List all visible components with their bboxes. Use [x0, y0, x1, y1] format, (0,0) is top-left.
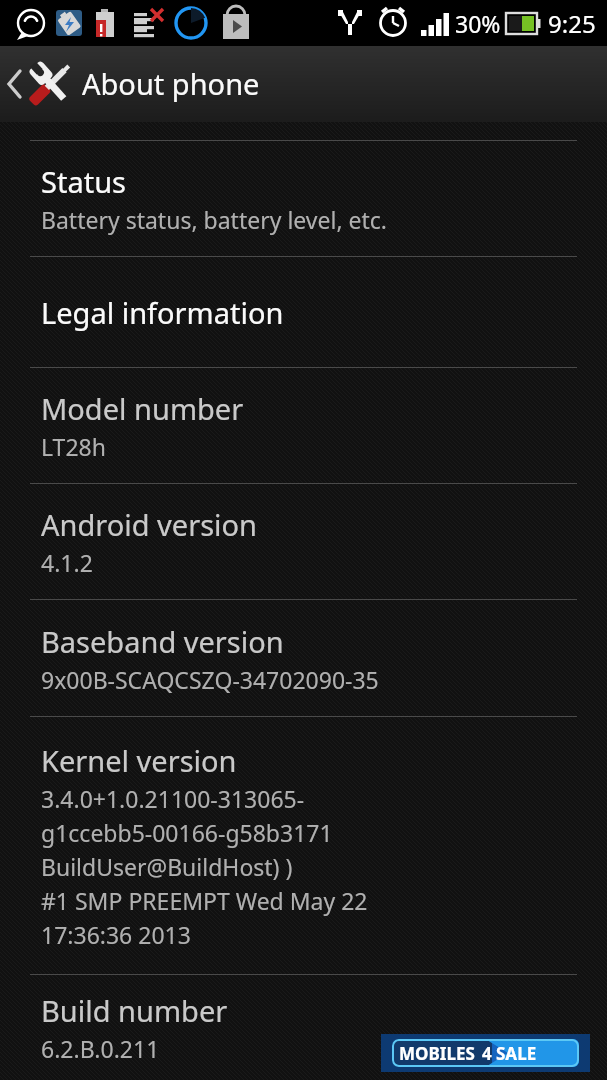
- staticText: Android version: [41, 505, 257, 544]
- staticText: Kernel version: [41, 741, 237, 780]
- button[interactable]: Navigate up, About phone: [0, 46, 607, 122]
- staticText: 3.4.0+1.0.21100-313065- g1ccebb5-00166-g…: [41, 783, 368, 950]
- staticText: MOBILES: [399, 1042, 475, 1065]
- staticText: 6.2.B.0.211: [41, 1033, 160, 1064]
- staticText: Status: [41, 162, 126, 201]
- button[interactable]: Legal information: [0, 257, 607, 367]
- staticText: Model number: [41, 389, 244, 428]
- staticText: 4: [482, 1042, 492, 1065]
- staticText: Baseband version: [41, 622, 284, 661]
- staticText: 9x00B-SCAQCSZQ-34702090-35: [41, 664, 379, 695]
- staticText: About phone: [82, 64, 260, 103]
- staticText: 4.1.2: [41, 547, 93, 578]
- button[interactable]: Status: [0, 141, 607, 256]
- staticText: Battery status, battery level, etc.: [41, 204, 388, 235]
- staticText: SALE: [496, 1042, 537, 1065]
- staticText: Legal information: [41, 293, 284, 332]
- staticText: LT28h: [41, 431, 106, 462]
- staticText: 30%: [455, 8, 501, 39]
- staticText: Build number: [41, 991, 228, 1030]
- staticText: 9:25: [548, 7, 596, 40]
